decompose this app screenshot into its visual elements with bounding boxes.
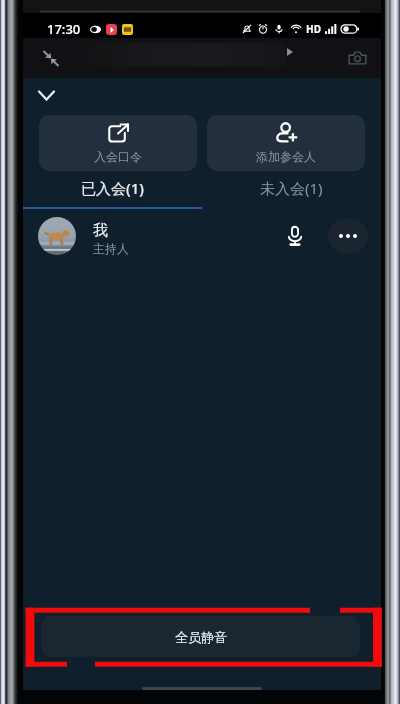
staticText: 添加参会人 xyxy=(256,149,316,164)
staticText: 主持人 xyxy=(93,241,129,256)
staticText: 我 xyxy=(93,221,108,240)
button[interactable]: Camera xyxy=(341,42,373,74)
button[interactable]: 我 xyxy=(38,209,368,263)
button[interactable]: 未入会(1) xyxy=(202,177,381,209)
button[interactable]: 全员静音 xyxy=(41,616,360,657)
button[interactable]: 已入会(1) xyxy=(23,177,202,209)
button[interactable]: 添加参会人 xyxy=(207,115,365,171)
staticText: 未入会(1) xyxy=(260,178,323,198)
button[interactable]: Minimize xyxy=(35,42,67,74)
button[interactable]: More options xyxy=(328,219,368,253)
staticText: HD xyxy=(306,22,321,36)
staticText: 入会口令 xyxy=(94,149,142,164)
button[interactable]: 入会口令 xyxy=(39,115,197,171)
button[interactable]: Microphone xyxy=(280,221,310,251)
staticText: 17:30 xyxy=(47,20,81,38)
button[interactable]: Collapse xyxy=(29,78,63,112)
staticText: 全员静音 xyxy=(175,629,227,645)
staticText: 已入会(1) xyxy=(81,178,144,198)
